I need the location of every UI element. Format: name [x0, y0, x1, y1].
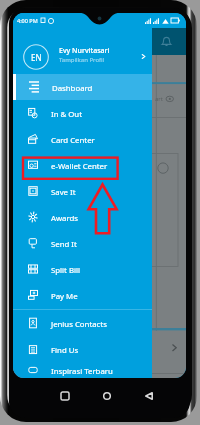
button[interactable]: Split Bill: [13, 256, 152, 282]
staticText: Jenius Contacts: [51, 319, 107, 330]
staticText: In & Out: [51, 109, 82, 120]
button[interactable]: Back: [137, 384, 161, 408]
button[interactable]: In & Out: [13, 100, 152, 126]
staticText: 4:00 PM: [17, 17, 38, 24]
button[interactable]: Inspirasi Terbaru: [13, 362, 152, 378]
staticText: Inspirasi Terbaru: [51, 366, 113, 377]
button[interactable]: Card Center: [13, 126, 152, 152]
button[interactable]: Home: [95, 384, 119, 408]
button[interactable]: Save It: [13, 178, 152, 204]
staticText: Split Bill: [51, 265, 81, 276]
button[interactable]: Find Us: [13, 336, 152, 362]
staticText: Awards: [51, 213, 79, 224]
staticText: Send It: [51, 239, 77, 250]
button[interactable]: Awards: [13, 204, 152, 230]
staticText: Find Us: [51, 345, 79, 356]
button[interactable]: e-Wallet Center: [13, 152, 152, 178]
staticText: EN: [31, 52, 42, 63]
button[interactable]: Jenius Contacts: [13, 310, 152, 336]
staticText: Save It: [51, 187, 76, 198]
button[interactable]: Pay Me: [13, 282, 152, 308]
staticText: Dashboard: [52, 83, 93, 94]
staticText: Pay Me: [51, 291, 78, 302]
staticText: e-Wallet Center: [51, 161, 108, 172]
staticText: Evy Nurvitasari: [59, 46, 110, 56]
staticText: Tampilkan Profil: [59, 56, 105, 64]
staticText: Card Center: [51, 135, 95, 146]
button[interactable]: Recent apps: [53, 384, 77, 408]
button[interactable]: Dashboard: [13, 74, 152, 100]
button[interactable]: EN: [13, 40, 152, 73]
button[interactable]: Send It: [13, 230, 152, 256]
staticText: art: [155, 95, 164, 103]
